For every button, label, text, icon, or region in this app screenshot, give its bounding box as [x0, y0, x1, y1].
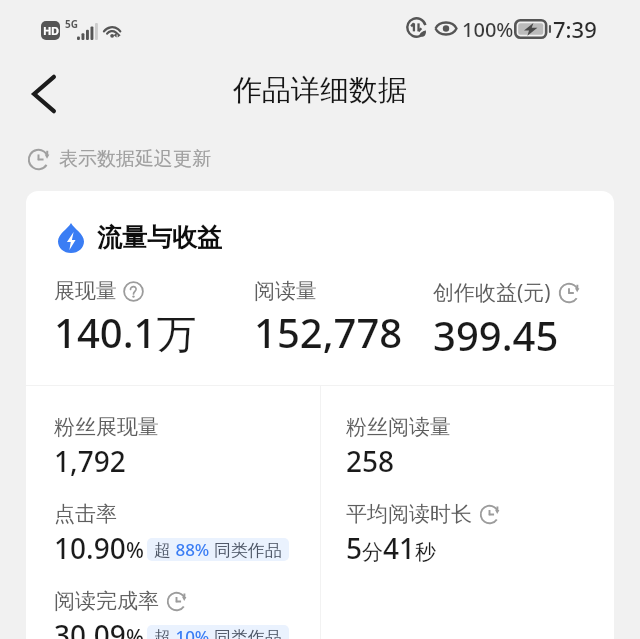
- staticText: 10.90: [54, 529, 126, 567]
- staticText: HD: [43, 23, 59, 38]
- staticText: 258: [346, 442, 395, 480]
- staticText: 超 10% 同类作品: [154, 625, 282, 639]
- staticText: 1,792: [54, 442, 126, 480]
- staticText: 152,778: [254, 305, 403, 359]
- staticText: 7:39: [553, 14, 597, 44]
- staticText: 超 88% 同类作品: [154, 538, 282, 561]
- button[interactable]: 展现量: [54, 278, 234, 360]
- staticText: 5分41秒: [346, 529, 437, 567]
- staticText: 点击率: [54, 501, 117, 527]
- staticText: 阅读量: [254, 278, 317, 304]
- staticText: %: [126, 536, 144, 565]
- staticText: 100%: [462, 16, 514, 43]
- staticText: 流量与收益: [97, 222, 222, 253]
- staticText: 作品详细数据: [233, 72, 407, 109]
- staticText: 展现量: [54, 278, 117, 304]
- staticText: 平均阅读时长: [346, 501, 472, 527]
- staticText: 140.1万: [54, 305, 197, 360]
- button[interactable]: 阅读量: [254, 278, 429, 359]
- staticText: 399.45: [433, 308, 559, 362]
- button[interactable]: 创作收益(元): [433, 278, 598, 362]
- staticText: %: [126, 623, 144, 639]
- staticText: 阅读完成率: [54, 588, 159, 614]
- button[interactable]: 关于展现量: [123, 281, 144, 302]
- staticText: 粉丝展现量: [54, 414, 159, 440]
- staticText: 粉丝阅读量: [346, 414, 451, 440]
- staticText: 30.09: [54, 616, 126, 639]
- staticText: 表示数据延迟更新: [59, 147, 211, 171]
- button[interactable]: Back: [16, 66, 72, 122]
- staticText: 5G: [65, 17, 78, 31]
- staticText: 创作收益(元): [433, 278, 551, 307]
